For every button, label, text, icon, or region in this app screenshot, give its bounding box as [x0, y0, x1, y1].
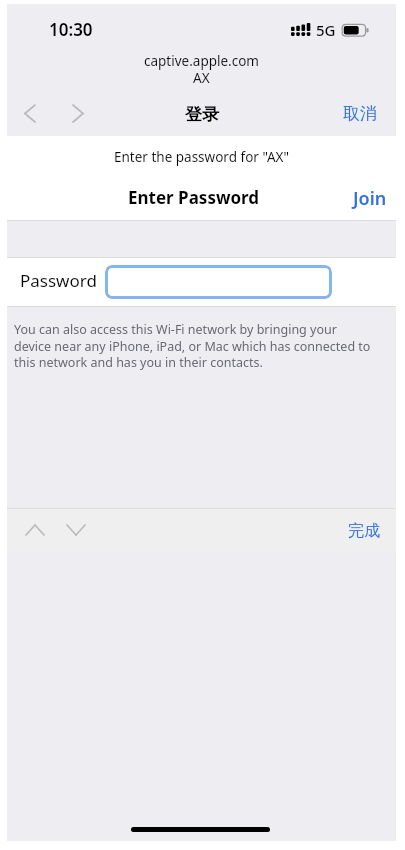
- button[interactable]: 完成: [338, 514, 390, 548]
- staticText: Enter Password: [128, 186, 260, 209]
- staticText: Enter the password for "AX": [114, 148, 289, 166]
- button[interactable]: Join: [344, 184, 396, 212]
- staticText: 完成: [348, 521, 380, 541]
- staticText: captive.apple.com: [144, 52, 259, 70]
- staticText: 取消: [343, 103, 377, 124]
- button[interactable]: Password field: [105, 265, 332, 299]
- staticText: 5G: [316, 20, 336, 40]
- staticText: AX: [193, 69, 210, 87]
- button[interactable]: 取消: [334, 93, 386, 133]
- staticText: Password: [20, 269, 97, 292]
- button[interactable]: Back: [8, 93, 52, 133]
- button[interactable]: Next field: [56, 511, 96, 549]
- staticText: You can also access this Wi-Fi network b…: [14, 321, 374, 370]
- staticText: 10:30: [49, 18, 93, 41]
- button[interactable]: Previous field: [15, 511, 55, 549]
- button[interactable]: Forward: [56, 93, 100, 133]
- staticText: Join: [353, 186, 387, 211]
- staticText: 登录: [185, 104, 219, 125]
